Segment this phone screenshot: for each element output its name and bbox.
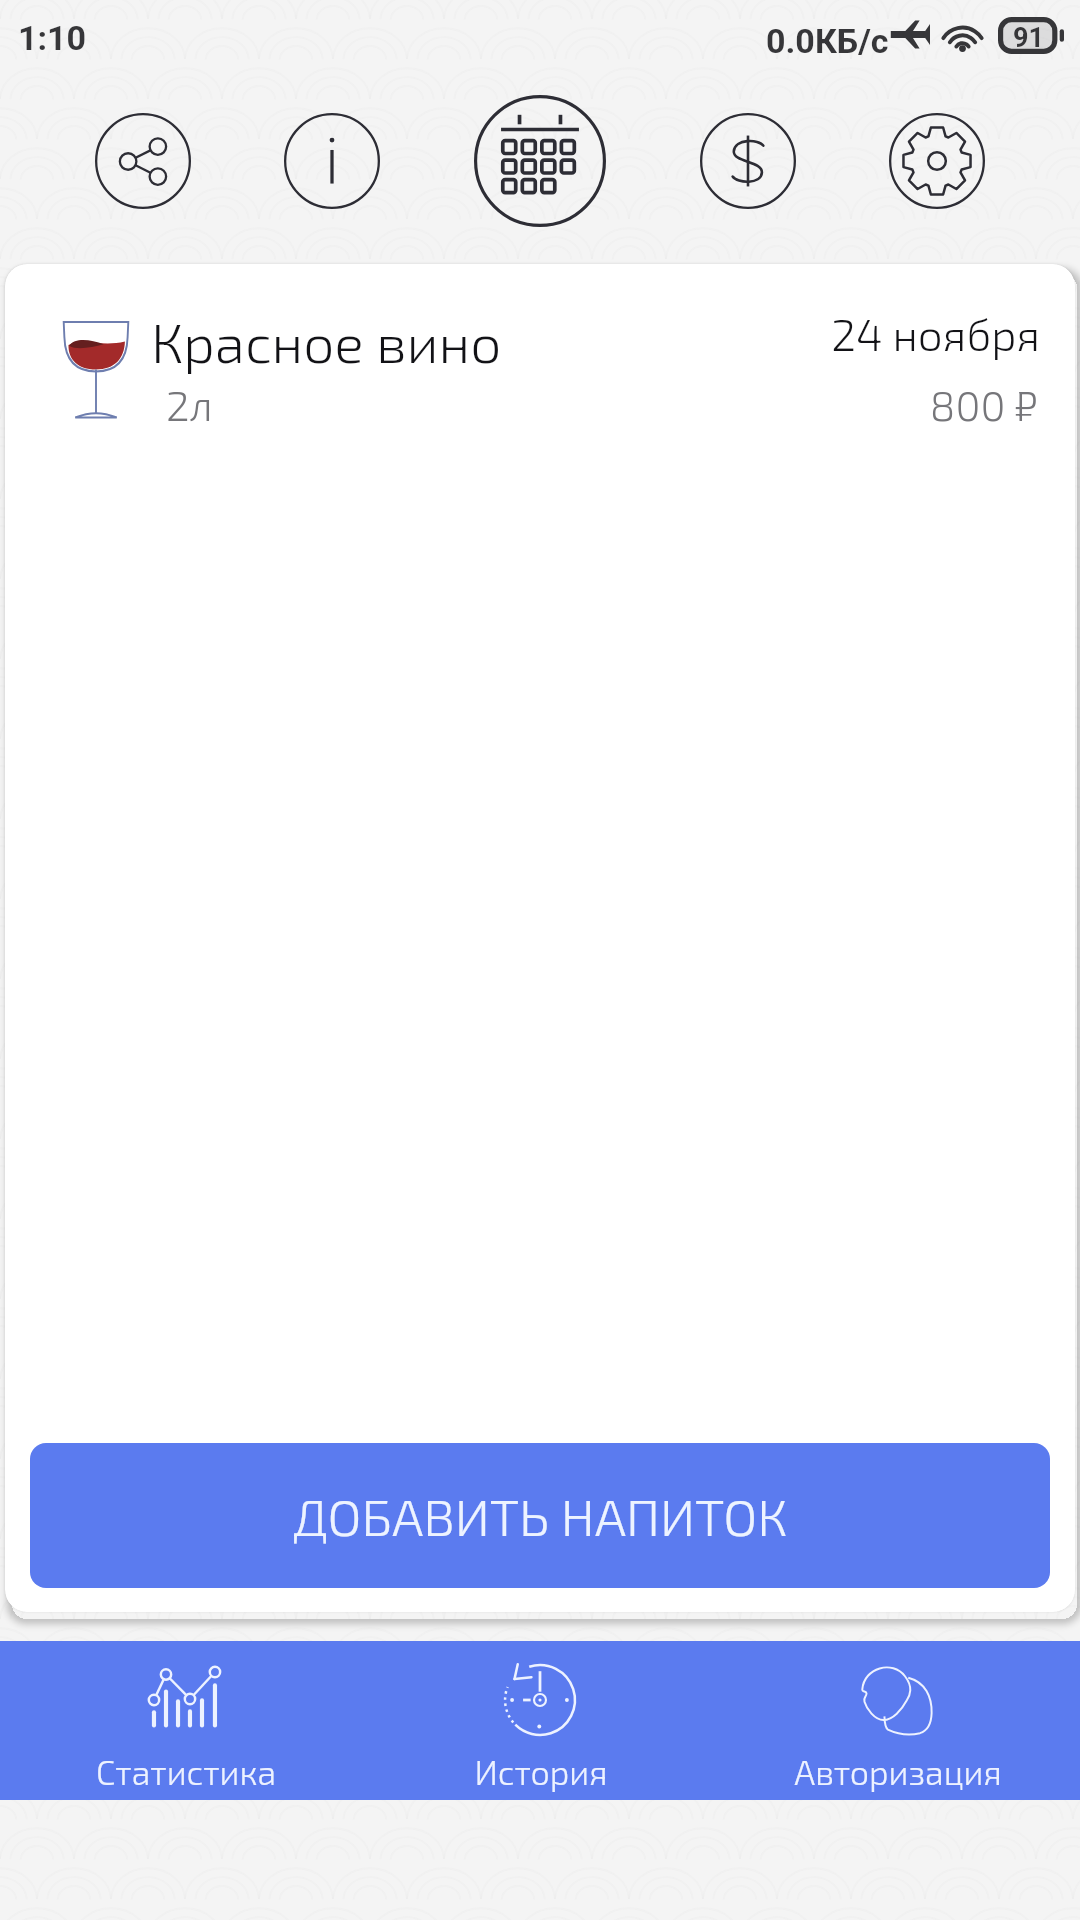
staticText: 91: [1013, 22, 1044, 54]
staticText: 24 ноября: [550, 307, 1040, 360]
button[interactable]: Info: [284, 113, 380, 209]
button[interactable]: История: [360, 1641, 720, 1800]
button[interactable]: Prices: [700, 113, 796, 209]
staticText: 2л: [166, 379, 213, 429]
staticText: 1:10: [18, 18, 87, 58]
staticText: Красное вино: [151, 308, 502, 374]
button[interactable]: Статистика: [0, 1641, 360, 1800]
staticText: Статистика: [6, 1751, 366, 1792]
staticText: История: [361, 1751, 721, 1792]
staticText: 800 ₽: [548, 379, 1038, 429]
staticText: 0.0КБ/с: [766, 21, 889, 61]
button[interactable]: Calendar: [474, 95, 606, 227]
button[interactable]: ДОБАВИТЬ НАПИТОК: [30, 1443, 1050, 1588]
staticText: ДОБАВИТЬ НАПИТОК: [293, 1485, 788, 1546]
button[interactable]: Красное вино: [5, 264, 1075, 464]
button[interactable]: Settings: [889, 113, 985, 209]
staticText: Авторизация: [718, 1751, 1078, 1792]
button[interactable]: Авторизация: [720, 1641, 1080, 1800]
button[interactable]: Share: [95, 113, 191, 209]
